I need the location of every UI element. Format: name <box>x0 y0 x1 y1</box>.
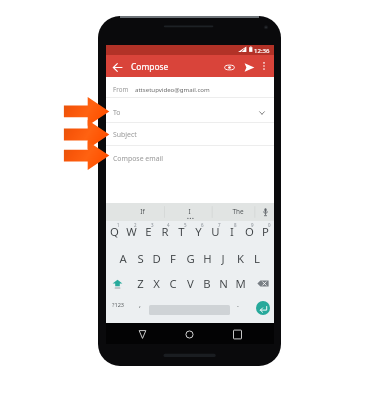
button[interactable] <box>140 221 157 246</box>
button[interactable] <box>249 248 266 273</box>
staticText: V <box>187 276 194 290</box>
staticText: P <box>262 224 269 238</box>
staticText: O <box>245 224 254 238</box>
staticText: Y <box>195 224 202 238</box>
button[interactable] <box>165 274 182 299</box>
staticText: 0 <box>268 222 271 228</box>
staticText: T <box>178 224 185 238</box>
staticText: G <box>186 251 195 265</box>
button[interactable] <box>181 248 198 273</box>
button[interactable] <box>173 221 190 246</box>
button[interactable] <box>133 297 147 319</box>
button[interactable] <box>207 221 224 246</box>
button[interactable] <box>234 297 246 319</box>
button[interactable] <box>114 248 131 273</box>
staticText: Compose <box>131 61 169 72</box>
staticText: 5 <box>184 222 187 228</box>
button[interactable] <box>232 248 249 273</box>
button[interactable] <box>240 221 257 246</box>
staticText: . <box>237 300 239 310</box>
staticText: X <box>153 276 160 290</box>
button[interactable] <box>165 248 182 273</box>
staticText: To <box>113 108 121 117</box>
staticText: attsetupvideo@gmail.com <box>135 85 210 93</box>
button[interactable]: More options <box>256 58 272 74</box>
button[interactable] <box>257 221 274 246</box>
staticText: I <box>188 207 191 216</box>
staticText: Subject <box>113 130 137 139</box>
staticText: W <box>126 224 137 238</box>
staticText: 4 <box>167 222 170 228</box>
staticText: Z <box>137 276 144 290</box>
staticText: E <box>145 224 152 238</box>
button[interactable] <box>215 248 232 273</box>
staticText: 12:36 <box>254 46 270 54</box>
button[interactable]: Navigate up <box>108 58 126 76</box>
button[interactable]: Space <box>147 297 232 322</box>
staticText: 8 <box>234 222 237 228</box>
staticText: 6 <box>201 222 204 228</box>
staticText: L <box>254 251 260 265</box>
staticText: A <box>119 251 127 265</box>
staticText: U <box>211 224 220 238</box>
staticText: 3 <box>151 222 154 228</box>
staticText: 7 <box>218 222 221 228</box>
button[interactable]: Attach file <box>220 58 238 76</box>
button[interactable] <box>198 274 215 299</box>
button[interactable]: Expand recipients <box>255 106 269 120</box>
staticText: N <box>219 276 228 290</box>
button[interactable] <box>181 274 198 299</box>
staticText: The <box>232 207 244 216</box>
button[interactable] <box>232 274 249 299</box>
staticText: 1 <box>117 222 120 228</box>
staticText: 2 <box>134 222 137 228</box>
button[interactable]: Shift <box>109 276 126 293</box>
button[interactable] <box>131 274 148 299</box>
button[interactable]: Enter <box>256 301 270 315</box>
button[interactable] <box>215 274 232 299</box>
button[interactable] <box>148 274 165 299</box>
button[interactable]: Send <box>240 58 258 76</box>
button[interactable]: If <box>128 204 156 218</box>
button[interactable] <box>131 248 148 273</box>
staticText: C <box>169 276 177 290</box>
staticText: J <box>221 251 225 265</box>
button[interactable] <box>106 146 274 201</box>
button[interactable]: Home <box>181 326 197 342</box>
button[interactable] <box>106 98 274 122</box>
button[interactable] <box>106 123 274 146</box>
button[interactable]: Backspace <box>255 276 270 291</box>
button[interactable] <box>156 221 173 246</box>
button[interactable]: I <box>175 204 203 218</box>
staticText: H <box>203 251 212 265</box>
button[interactable]: Recent apps <box>229 326 245 342</box>
staticText: R <box>161 224 169 238</box>
staticText: From <box>113 85 129 93</box>
staticText: K <box>237 251 244 265</box>
button[interactable] <box>123 221 140 246</box>
button[interactable]: Voice input <box>260 206 271 217</box>
staticText: I <box>230 224 234 238</box>
staticText: 9 <box>251 222 254 228</box>
staticText: ?123 <box>112 301 125 309</box>
staticText: S <box>137 251 144 265</box>
button[interactable] <box>106 221 123 246</box>
staticText: F <box>170 251 176 265</box>
staticText: , <box>139 300 141 310</box>
staticText: Q <box>110 224 119 238</box>
staticText: If <box>140 207 145 216</box>
button[interactable] <box>198 248 215 273</box>
button[interactable] <box>148 248 165 273</box>
button[interactable]: Symbols <box>106 297 131 319</box>
button[interactable] <box>106 78 274 98</box>
staticText: B <box>203 276 211 290</box>
button[interactable] <box>223 221 240 246</box>
staticText: D <box>152 251 161 265</box>
staticText: Compose email <box>113 154 164 163</box>
button[interactable]: The <box>224 204 252 218</box>
staticText: M <box>235 276 246 290</box>
button[interactable] <box>190 221 207 246</box>
button[interactable]: Back <box>134 326 150 342</box>
